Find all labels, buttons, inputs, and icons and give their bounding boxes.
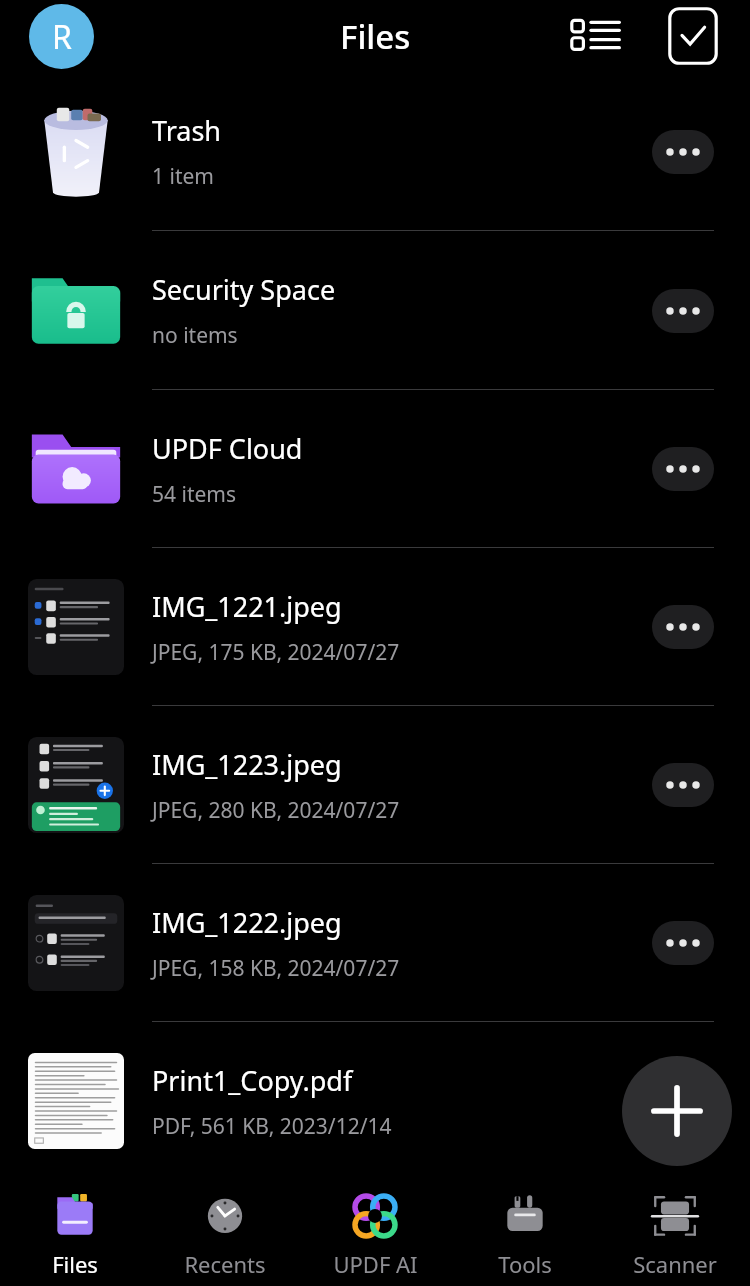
staticText: IMG_1222.jpeg <box>152 904 342 941</box>
button[interactable]: List view <box>566 7 624 65</box>
button[interactable]: UPDF Cloud <box>0 390 750 548</box>
staticText: JPEG, 158 KB, 2024/07/27 <box>152 954 400 983</box>
button[interactable]: Security Space <box>0 231 750 390</box>
button[interactable]: Add <box>622 1056 732 1166</box>
button[interactable]: Print1_Copy.pdf <box>0 1022 750 1180</box>
button[interactable]: More options <box>652 763 714 807</box>
staticText: Files <box>52 1249 98 1279</box>
staticText: Files <box>340 14 411 59</box>
staticText: JPEG, 175 KB, 2024/07/27 <box>152 638 400 667</box>
button[interactable]: Trash <box>0 72 750 231</box>
button[interactable]: Select <box>664 7 722 65</box>
button[interactable]: UPDF AI <box>300 1180 450 1286</box>
staticText: Recents <box>184 1249 266 1279</box>
button[interactable]: More options <box>652 605 714 649</box>
staticText: R <box>52 15 72 59</box>
staticText: UPDF AI <box>333 1249 418 1279</box>
button[interactable]: Account <box>29 4 94 69</box>
staticText: UPDF Cloud <box>152 430 303 467</box>
button[interactable]: More options <box>652 447 714 491</box>
staticText: IMG_1221.jpeg <box>152 588 342 625</box>
staticText: Trash <box>152 112 222 149</box>
staticText: Security Space <box>152 271 336 308</box>
staticText: no items <box>152 321 238 350</box>
button[interactable]: Recents <box>150 1180 300 1286</box>
staticText: JPEG, 280 KB, 2024/07/27 <box>152 796 400 825</box>
button[interactable]: Files <box>0 1180 150 1286</box>
button[interactable]: IMG_1221.jpeg <box>0 548 750 706</box>
button[interactable]: IMG_1223.jpeg <box>0 706 750 864</box>
button[interactable]: More options <box>652 130 714 174</box>
button[interactable]: Scanner <box>600 1180 750 1286</box>
staticText: IMG_1223.jpeg <box>152 746 342 783</box>
staticText: 1 item <box>152 162 214 191</box>
button[interactable]: More options <box>652 289 714 333</box>
button[interactable]: More options <box>652 1079 714 1123</box>
staticText: PDF, 561 KB, 2023/12/14 <box>152 1112 392 1141</box>
staticText: Print1_Copy.pdf <box>152 1062 353 1099</box>
button[interactable]: More options <box>652 921 714 965</box>
button[interactable]: IMG_1222.jpeg <box>0 864 750 1022</box>
staticText: Scanner <box>633 1249 717 1279</box>
staticText: 54 items <box>152 480 237 509</box>
staticText: Tools <box>498 1249 552 1279</box>
button[interactable]: Tools <box>450 1180 600 1286</box>
